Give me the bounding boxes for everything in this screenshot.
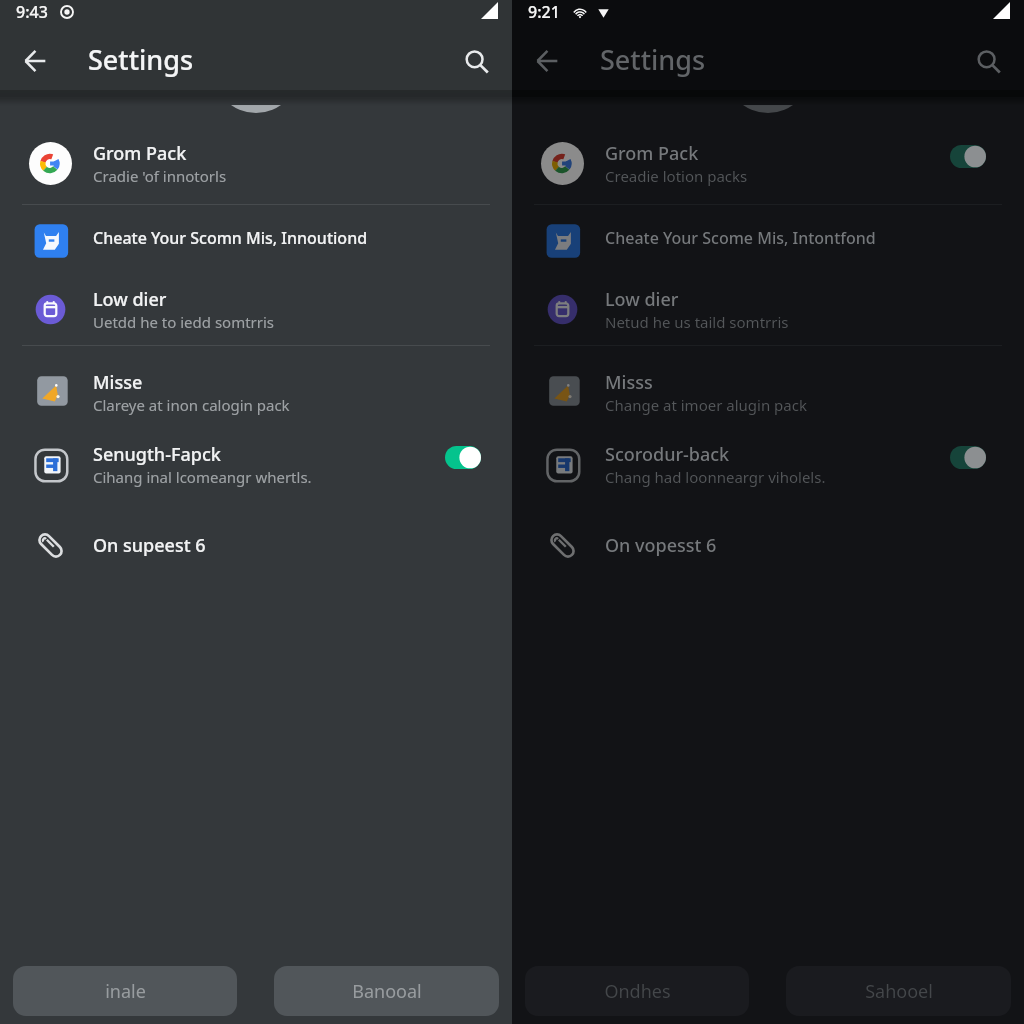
staticText: Settings [88,41,194,78]
button[interactable]: Cheate Your Scomn Mis, Innoutiond [0,204,512,272]
staticText: Low dier [93,287,167,312]
staticText: Chang had loonneargr viholels. [605,467,826,487]
staticText: On vopesst 6 [605,533,717,558]
staticText: Ondhes [604,979,671,1004]
button[interactable]: Search [967,37,1011,81]
staticText: 9:21 [528,1,560,23]
staticText: Creadie lotion packs [605,166,748,186]
staticText: Senugth-Fapck [93,442,221,467]
button[interactable]: Low dier [512,263,1024,355]
button[interactable]: Grom Pack [0,117,512,209]
staticText: Cihang inal lcomeangr whertls. [93,467,312,487]
button[interactable]: Low dier [0,263,512,355]
staticText: Cheate Your Scomn Mis, Innoutiond [93,227,368,249]
staticText: Grom Pack [93,141,187,166]
button[interactable]: Misss [512,346,1024,438]
button[interactable]: Sahooel [786,966,1011,1016]
button[interactable]: Back [526,38,568,80]
button[interactable]: On vopesst 6 [512,511,1024,579]
button[interactable]: Search [455,37,499,81]
button[interactable]: Toggle [950,446,986,469]
button[interactable]: On supeest 6 [0,511,512,579]
staticText: Change at imoer alugin pack [605,395,807,415]
button[interactable]: Senugth-Fapck [0,418,512,510]
staticText: Scorodur-back [605,442,730,467]
staticText: Cheate Your Scome Mis, Intontfond [605,227,876,249]
button[interactable]: Banooal [274,966,499,1016]
button[interactable]: Ondhes [525,966,749,1016]
button[interactable]: Back [14,38,56,80]
staticText: On supeest 6 [93,533,206,558]
staticText: Netud he us taild somtrris [605,312,789,332]
staticText: Low dier [605,287,679,312]
staticText: inale [105,979,146,1004]
button[interactable]: Scorodur-back [512,418,1024,510]
button[interactable]: Misse [0,346,512,438]
staticText: Misse [93,370,143,395]
staticText: Settings [600,41,706,78]
button[interactable]: inale [13,966,237,1016]
button[interactable]: Grom Pack [512,117,1024,209]
staticText: Grom Pack [605,141,699,166]
button[interactable]: Toggle [445,446,481,469]
staticText: 9:43 [16,1,48,23]
staticText: Clareye at inon calogin pack [93,395,290,415]
staticText: Banooal [352,979,422,1004]
button[interactable]: Toggle [950,145,986,168]
staticText: Uetdd he to iedd somtrris [93,312,275,332]
button[interactable]: Cheate Your Scome Mis, Intontfond [512,204,1024,272]
staticText: Misss [605,370,653,395]
staticText: Sahooel [865,979,933,1004]
staticText: Cradie 'of innotorls [93,166,227,186]
